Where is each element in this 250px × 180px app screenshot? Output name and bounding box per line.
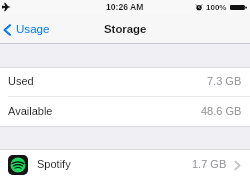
button[interactable]: Usage	[3, 23, 50, 36]
button[interactable]: Available	[0, 97, 250, 126]
staticText: 10:26 AM	[106, 2, 144, 12]
staticText: Usage	[16, 22, 50, 35]
staticText: 48.6 GB	[201, 105, 242, 117]
staticText: Available	[8, 105, 53, 117]
button[interactable]: Used	[0, 68, 250, 96]
staticText: Storage	[104, 23, 147, 36]
staticText: Spotify	[37, 158, 71, 170]
button[interactable]: Spotify	[0, 150, 250, 180]
staticText: 1.7 GB	[192, 158, 227, 170]
staticText: 100%	[206, 3, 227, 12]
staticText: Used	[8, 75, 34, 87]
staticText: 7.3 GB	[207, 75, 242, 87]
